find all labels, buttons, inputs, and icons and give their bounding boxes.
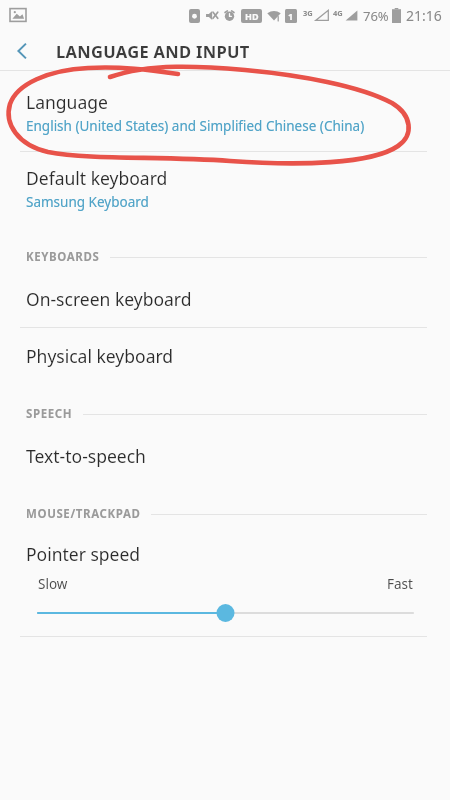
staticText: Pointer speed: [26, 542, 141, 566]
button[interactable]: On-screen keyboard: [0, 271, 450, 327]
button[interactable]: Pointer speed: [0, 528, 450, 636]
button[interactable]: Physical keyboard: [0, 328, 450, 384]
staticText: 21:16: [406, 6, 442, 25]
button[interactable]: Text-to-speech: [0, 428, 450, 484]
staticText: SPEECH: [26, 406, 73, 422]
staticText: Fast: [387, 575, 413, 593]
staticText: 1: [288, 10, 294, 22]
button[interactable]: Back: [0, 30, 44, 71]
staticText: Samsung Keyboard: [26, 193, 149, 211]
staticText: Language: [26, 90, 108, 114]
staticText: Physical keyboard: [26, 344, 174, 368]
staticText: 3G: [303, 8, 313, 18]
staticText: 4G: [333, 8, 343, 18]
staticText: On-screen keyboard: [26, 287, 192, 311]
staticText: Slow: [38, 575, 68, 593]
staticText: HD: [245, 10, 259, 22]
staticText: 76%: [363, 7, 389, 25]
staticText: English (United States) and Simplified C…: [26, 117, 365, 135]
staticText: MOUSE/TRACKPAD: [26, 506, 141, 522]
button[interactable]: Language: [0, 71, 450, 151]
staticText: LANGUAGE AND INPUT: [56, 40, 250, 62]
staticText: Text-to-speech: [26, 444, 146, 468]
staticText: Default keyboard: [26, 166, 168, 190]
staticText: KEYBOARDS: [26, 249, 100, 265]
button[interactable]: Default keyboard: [0, 152, 450, 227]
